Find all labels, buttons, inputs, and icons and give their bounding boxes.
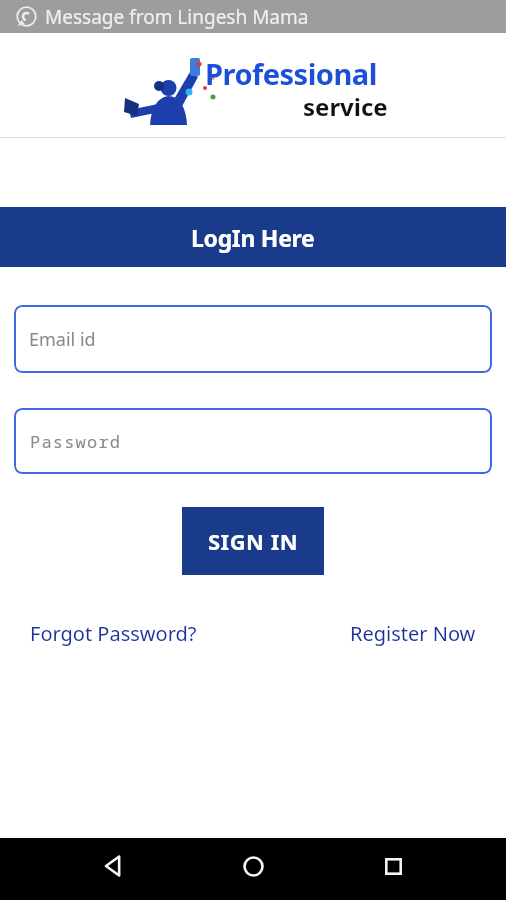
button[interactable]: Forgot Password? [30, 620, 197, 647]
button[interactable] [361, 835, 425, 897]
staticText: Professional [205, 54, 377, 93]
staticText: LogIn Here [191, 222, 315, 253]
staticText: Password [30, 430, 122, 453]
button[interactable] [221, 835, 285, 897]
staticText: Register Now [350, 620, 476, 647]
button[interactable]: Email id [14, 305, 492, 373]
staticText: SIGN IN [208, 526, 299, 556]
staticText: Forgot Password? [30, 620, 197, 647]
staticText: Email id [29, 327, 96, 352]
button[interactable]: Password [14, 408, 492, 474]
staticText: service [303, 90, 388, 123]
staticText: Message from Lingesh Mama [45, 4, 309, 30]
button[interactable]: SIGN IN [182, 507, 324, 575]
button[interactable] [81, 835, 145, 897]
button[interactable]: Register Now [350, 620, 476, 647]
